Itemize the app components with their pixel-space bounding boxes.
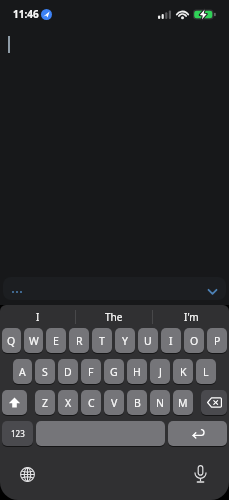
staticText: U xyxy=(144,334,152,348)
button[interactable]: I xyxy=(0,305,75,328)
button[interactable] xyxy=(3,277,226,300)
button[interactable]: N xyxy=(150,390,170,416)
staticText: Z xyxy=(42,396,49,410)
button[interactable] xyxy=(168,421,227,447)
staticText: P xyxy=(214,334,221,348)
staticText: K xyxy=(180,365,187,379)
staticText: C xyxy=(88,396,95,410)
button[interactable]: Q xyxy=(2,328,21,354)
staticText: O xyxy=(190,334,199,348)
button[interactable]: M xyxy=(173,390,193,416)
staticText: I xyxy=(169,334,173,348)
button[interactable] xyxy=(36,421,165,447)
staticText: X xyxy=(65,396,72,410)
button[interactable]: B xyxy=(127,390,147,416)
staticText: J xyxy=(159,365,162,379)
staticText: Y xyxy=(122,334,128,348)
button[interactable]: I xyxy=(161,328,181,354)
button[interactable]: 123 xyxy=(2,421,33,447)
button[interactable]: C xyxy=(81,390,101,416)
staticText: F xyxy=(88,365,94,379)
staticText: M xyxy=(178,396,188,410)
staticText: R xyxy=(76,334,83,348)
button[interactable]: U xyxy=(138,328,158,354)
button[interactable] xyxy=(201,390,227,416)
button[interactable]: X xyxy=(58,390,78,416)
button[interactable]: S xyxy=(35,359,55,385)
button[interactable]: G xyxy=(104,359,124,385)
staticText: The xyxy=(105,310,123,324)
button[interactable]: V xyxy=(104,390,124,416)
button[interactable] xyxy=(188,462,212,486)
button[interactable]: Z xyxy=(35,390,55,416)
staticText: N xyxy=(156,396,164,410)
button[interactable]: E xyxy=(46,328,66,354)
staticText: T xyxy=(99,334,105,348)
button[interactable]: L xyxy=(196,359,216,385)
staticText: L xyxy=(203,365,209,379)
staticText: H xyxy=(133,365,141,379)
button[interactable]: D xyxy=(58,359,78,385)
staticText: 11:46 xyxy=(13,7,39,21)
button[interactable]: H xyxy=(127,359,147,385)
button[interactable]: P xyxy=(207,328,227,354)
staticText: I xyxy=(36,310,40,324)
staticText: G xyxy=(110,365,118,379)
staticText: S xyxy=(42,365,48,379)
button[interactable]: O xyxy=(184,328,204,354)
button[interactable]: Y xyxy=(115,328,135,354)
staticText: A xyxy=(19,365,26,379)
staticText: D xyxy=(64,365,72,379)
button[interactable]: F xyxy=(81,359,101,385)
staticText: E xyxy=(53,334,59,348)
button[interactable]: I'm xyxy=(153,305,229,328)
staticText: 123 xyxy=(11,428,25,439)
staticText: V xyxy=(111,396,118,410)
button[interactable]: The xyxy=(76,305,152,328)
staticText: Q xyxy=(7,334,16,348)
button[interactable]: A xyxy=(13,359,32,385)
button[interactable] xyxy=(15,462,39,486)
button[interactable]: W xyxy=(24,328,43,354)
staticText: B xyxy=(134,396,141,410)
staticText: I'm xyxy=(184,310,199,324)
staticText: W xyxy=(29,334,39,348)
button[interactable]: R xyxy=(69,328,89,354)
button[interactable]: T xyxy=(92,328,112,354)
button[interactable]: K xyxy=(173,359,193,385)
button[interactable] xyxy=(2,390,27,416)
button[interactable]: J xyxy=(150,359,170,385)
